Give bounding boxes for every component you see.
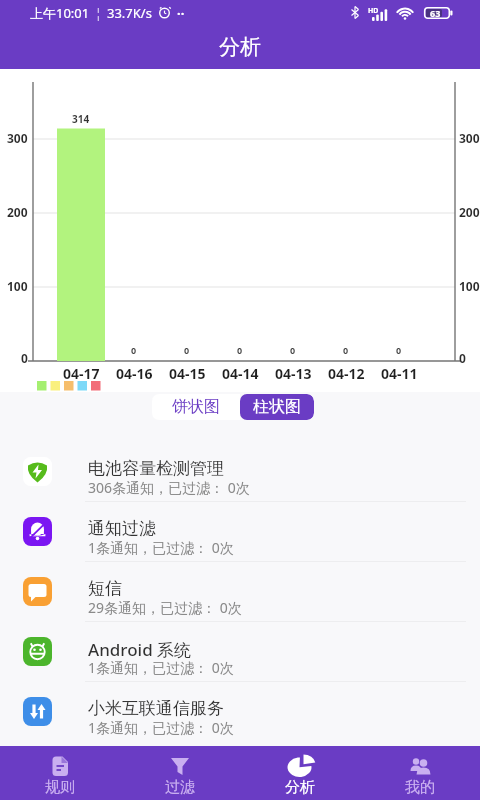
staticText: 04-13 xyxy=(275,364,312,383)
staticText: 0 xyxy=(184,344,190,356)
staticText: 200 xyxy=(7,204,28,220)
staticText: 分析 xyxy=(219,34,261,60)
staticText: ·· xyxy=(177,4,185,22)
staticText: 1条通知，已过滤： 0次 xyxy=(88,538,234,557)
staticText: 0 xyxy=(290,344,296,356)
staticText: HD xyxy=(368,6,379,16)
staticText: 300 xyxy=(459,130,480,146)
staticText: 0 xyxy=(237,344,243,356)
staticText: 分析 xyxy=(285,778,315,797)
button[interactable]: 通知过滤 xyxy=(0,502,480,562)
staticText: 04-17 xyxy=(63,364,100,383)
button[interactable]: 我的 xyxy=(360,746,480,800)
button[interactable]: 电池容量检测管理 xyxy=(0,442,480,502)
staticText: 04-15 xyxy=(169,364,206,383)
staticText: 0 xyxy=(343,344,349,356)
staticText: 314 xyxy=(72,112,90,126)
staticText: 100 xyxy=(459,278,480,294)
staticText: 上午10:01 xyxy=(30,4,90,22)
button[interactable]: 柱状图 xyxy=(240,394,314,420)
staticText: 04-12 xyxy=(328,364,365,383)
staticText: 04-11 xyxy=(381,364,418,383)
staticText: 33.7K/s xyxy=(107,4,152,22)
staticText: 1条通知，已过滤： 0次 xyxy=(88,718,234,737)
button[interactable]: 分析 xyxy=(240,746,360,800)
staticText: 100 xyxy=(7,278,28,294)
staticText: 04-14 xyxy=(222,364,259,383)
staticText: 0 xyxy=(21,350,28,366)
staticText: 1条通知，已过滤： 0次 xyxy=(88,658,234,677)
staticText: 63 xyxy=(430,7,441,19)
staticText: 规则 xyxy=(45,778,75,797)
button[interactable]: 饼状图 xyxy=(152,394,240,420)
staticText: 小米互联通信服务 xyxy=(88,698,224,719)
button[interactable]: 小米互联通信服务 xyxy=(0,682,480,742)
staticText: 过滤 xyxy=(165,778,195,797)
staticText: 04-16 xyxy=(116,364,153,383)
staticText: ¦ xyxy=(95,5,102,21)
staticText: 200 xyxy=(459,204,480,220)
staticText: 柱状图 xyxy=(253,397,301,417)
staticText: 饼状图 xyxy=(172,397,220,417)
staticText: 我的 xyxy=(405,778,435,797)
staticText: 29条通知，已过滤： 0次 xyxy=(88,598,242,617)
staticText: 短信 xyxy=(88,578,122,599)
staticText: 300 xyxy=(7,130,28,146)
staticText: 通知过滤 xyxy=(88,518,156,539)
staticText: Android 系统 xyxy=(88,638,192,661)
staticText: 0 xyxy=(459,350,466,366)
button[interactable]: 短信 xyxy=(0,562,480,622)
staticText: 电池容量检测管理 xyxy=(88,458,224,479)
staticText: 306条通知，已过滤： 0次 xyxy=(88,478,250,497)
staticText: 0 xyxy=(131,344,137,356)
button[interactable]: Android 系统 xyxy=(0,622,480,682)
button[interactable]: 规则 xyxy=(0,746,120,800)
button[interactable]: 过滤 xyxy=(120,746,240,800)
staticText: 0 xyxy=(396,344,402,356)
